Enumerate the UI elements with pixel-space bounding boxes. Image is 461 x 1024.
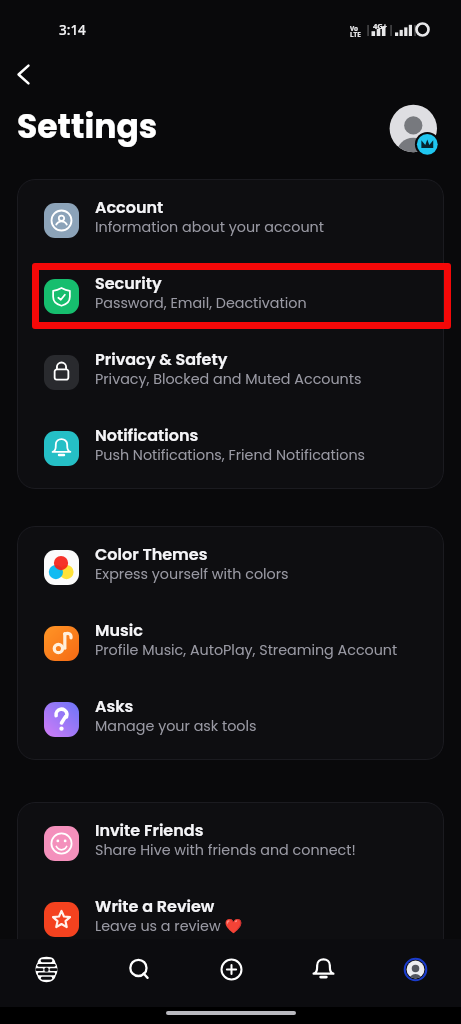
staticText: Invite Friends	[95, 819, 204, 841]
button[interactable]: Profile	[369, 941, 461, 997]
staticText: Music	[95, 619, 143, 641]
staticText: Share Hive with friends and connect!	[95, 840, 356, 860]
staticText: Notifications	[95, 424, 199, 446]
button[interactable]: Notifications	[277, 941, 369, 997]
button[interactable]: Security	[17, 258, 444, 334]
staticText: Security	[95, 272, 162, 294]
staticText: Information about your account	[95, 217, 324, 237]
button[interactable]: Asks	[17, 681, 444, 757]
staticText: VoLTE	[350, 24, 361, 39]
button[interactable]: Write a Review	[17, 881, 444, 957]
button[interactable]: Create	[185, 941, 277, 997]
staticText: 4G+	[373, 21, 388, 31]
button[interactable]: Music	[17, 605, 444, 681]
staticText: Color Themes	[95, 543, 208, 565]
button[interactable]: Home	[0, 941, 93, 997]
button[interactable]: Color Themes	[17, 529, 444, 605]
button[interactable]: Profile	[386, 101, 441, 156]
staticText: Leave us a review ❤️	[95, 916, 243, 936]
staticText: Settings	[17, 103, 158, 149]
staticText: Profile Music, AutoPlay, Streaming Accou…	[95, 640, 398, 660]
staticText: Asks	[95, 695, 134, 717]
staticText: Privacy & Safety	[95, 348, 228, 370]
staticText: Express yourself with colors	[95, 564, 289, 584]
staticText: Account	[95, 196, 164, 218]
staticText: Write a Review	[95, 895, 215, 917]
staticText: Push Notifications, Friend Notifications	[95, 445, 365, 465]
button[interactable]: Back	[8, 59, 39, 90]
staticText: 3:14	[59, 21, 86, 39]
button[interactable]: Search	[93, 941, 185, 997]
staticText: Privacy, Blocked and Muted Accounts	[95, 369, 362, 389]
button[interactable]: Notifications	[17, 410, 444, 486]
staticText: Password, Email, Deactivation	[95, 293, 307, 313]
button[interactable]: Privacy & Safety	[17, 334, 444, 410]
button[interactable]: Account	[17, 182, 444, 258]
button[interactable]: Invite Friends	[17, 805, 444, 881]
staticText: Manage your ask tools	[95, 716, 257, 736]
